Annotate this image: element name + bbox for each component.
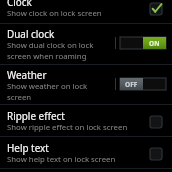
button[interactable]: Ripple effect [0, 105, 172, 136]
staticText: OFF [125, 80, 138, 89]
button[interactable]: Clock [150, 3, 162, 15]
button[interactable]: Help text [0, 137, 172, 168]
staticText: Show help text on lock screen [7, 154, 116, 165]
button[interactable]: Clock [0, 0, 172, 23]
staticText: Ripple effect [7, 109, 65, 122]
staticText: Clock [7, 0, 32, 8]
staticText: Show weather on lock screen [7, 81, 102, 102]
staticText: Help text [7, 141, 49, 154]
button[interactable]: Dual clock [0, 24, 172, 64]
staticText: Show dual clock on lock screen when roam… [7, 40, 102, 61]
button[interactable]: Weather [0, 65, 172, 104]
button[interactable]: Help text [150, 148, 162, 160]
button[interactable]: Dual clock on [120, 37, 166, 49]
button[interactable]: Ripple effect [150, 116, 162, 128]
staticText: ON [149, 39, 160, 48]
staticText: Weather [7, 68, 47, 81]
staticText: Show clock on lock screen [7, 8, 102, 19]
button[interactable]: Weather off [120, 78, 166, 90]
staticText: Show ripple effect on lock screen [7, 122, 128, 133]
staticText: Dual clock [7, 27, 55, 40]
